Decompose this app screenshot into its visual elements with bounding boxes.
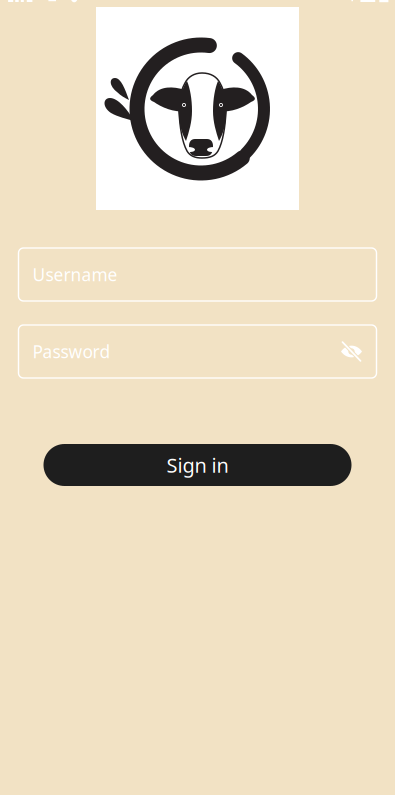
staticText: Password	[32, 340, 110, 363]
staticText: Username	[32, 263, 117, 286]
button[interactable]: Password	[18, 325, 376, 378]
staticText: Sign in	[166, 452, 228, 478]
button[interactable]: Sign in	[43, 444, 351, 486]
button[interactable]: Username	[18, 248, 376, 301]
